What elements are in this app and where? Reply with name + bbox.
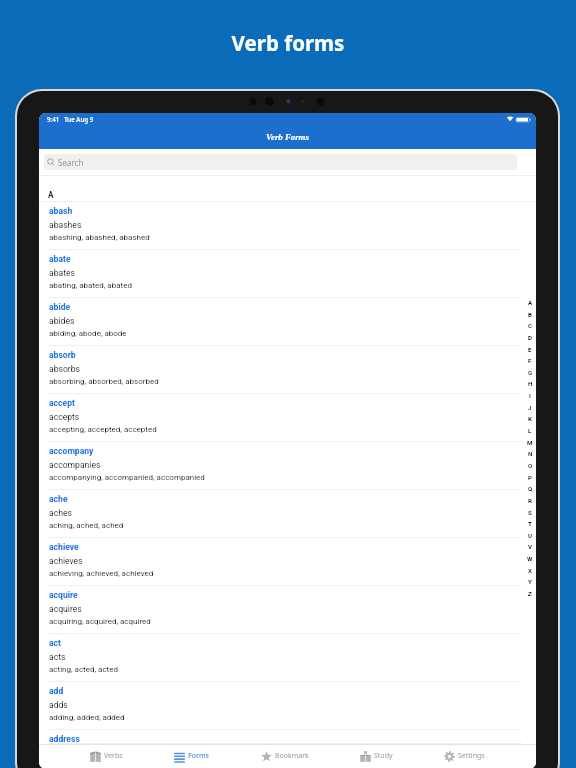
staticText: achieves: [49, 556, 83, 566]
staticText: abate: [49, 254, 71, 264]
button[interactable]: accept: [39, 394, 536, 442]
staticText: K: [528, 415, 532, 422]
button[interactable]: Study: [360, 745, 393, 768]
staticText: O: [528, 462, 533, 469]
staticText: acquiring, acquired, acquired: [49, 617, 151, 626]
staticText: add: [49, 686, 64, 696]
staticText: E: [528, 346, 532, 353]
staticText: accepting, accepted, accepted: [49, 425, 157, 434]
button[interactable]: ache: [39, 490, 536, 538]
staticText: Verb forms: [0, 29, 576, 57]
staticText: Verbs: [104, 751, 123, 761]
staticText: ache: [49, 494, 68, 504]
button[interactable]: act: [39, 634, 536, 682]
staticText: S: [528, 509, 532, 516]
staticText: abiding, abode, abode: [49, 329, 127, 338]
staticText: absorb: [49, 350, 76, 360]
staticText: C: [528, 322, 533, 329]
staticText: acquires: [49, 604, 82, 614]
staticText: J: [528, 404, 532, 411]
button[interactable]: Settings: [444, 745, 485, 768]
staticText: accept: [49, 398, 75, 408]
staticText: Forms: [188, 751, 209, 761]
staticText: N: [528, 450, 533, 457]
staticText: achieving, achieved, achieved: [49, 569, 154, 578]
button[interactable]: Bookmark: [261, 745, 309, 768]
staticText: R: [528, 497, 532, 504]
staticText: address: [49, 734, 80, 744]
button[interactable]: abide: [39, 298, 536, 346]
staticText: acting, acted, acted: [49, 665, 118, 674]
staticText: A: [528, 299, 533, 306]
staticText: abashes: [49, 220, 82, 230]
staticText: adds: [49, 700, 68, 710]
staticText: aching, ached, ached: [49, 521, 124, 530]
button[interactable]: Search: [44, 154, 517, 170]
staticText: aches: [49, 508, 72, 518]
staticText: V: [528, 543, 533, 550]
staticText: X: [528, 567, 532, 574]
staticText: A: [48, 190, 54, 200]
staticText: Search: [58, 157, 84, 168]
staticText: Q: [528, 485, 533, 492]
staticText: abide: [49, 302, 71, 312]
staticText: adding, added, added: [49, 713, 125, 722]
staticText: H: [528, 380, 533, 387]
staticText: 9:41 Tue Aug 9: [47, 115, 94, 123]
staticText: accompanies: [49, 460, 101, 470]
staticText: Y: [528, 578, 532, 585]
staticText: addressing, addressed, addressed: [49, 761, 171, 768]
staticText: abashing, abashed, abashed: [49, 233, 150, 242]
staticText: P: [528, 474, 532, 481]
button[interactable]: abate: [39, 250, 536, 298]
staticText: absorbing, absorbed, absorbed: [49, 377, 159, 386]
button[interactable]: add: [39, 682, 536, 730]
button[interactable]: achieve: [39, 538, 536, 586]
staticText: absorbs: [49, 364, 81, 374]
button[interactable]: Verbs: [90, 745, 123, 768]
staticText: accompany: [49, 446, 94, 456]
staticText: accompanying, accompanied, accompanied: [49, 473, 205, 482]
staticText: act: [49, 638, 61, 648]
button[interactable]: Forms: [174, 745, 209, 768]
staticText: D: [528, 334, 533, 341]
staticText: T: [528, 520, 532, 527]
staticText: accepts: [49, 412, 80, 422]
staticText: Settings: [458, 751, 485, 761]
button[interactable]: abash: [39, 202, 536, 250]
staticText: abash: [49, 206, 73, 216]
staticText: U: [528, 532, 533, 539]
staticText: Z: [528, 590, 532, 597]
staticText: Study: [374, 751, 393, 761]
staticText: Verb Forms: [39, 132, 536, 142]
staticText: acts: [49, 652, 66, 662]
button[interactable]: address: [39, 730, 536, 744]
staticText: acquire: [49, 590, 78, 600]
staticText: F: [528, 357, 532, 364]
button[interactable]: absorb: [39, 346, 536, 394]
staticText: L: [528, 427, 532, 434]
staticText: abates: [49, 268, 75, 278]
staticText: W: [527, 555, 533, 562]
button[interactable]: accompany: [39, 442, 536, 490]
staticText: abides: [49, 316, 75, 326]
staticText: abating, abated, abated: [49, 281, 132, 290]
staticText: Bookmark: [275, 751, 309, 761]
staticText: M: [527, 439, 533, 446]
staticText: B: [528, 311, 532, 318]
button[interactable]: acquire: [39, 586, 536, 634]
staticText: I: [529, 392, 531, 399]
staticText: achieve: [49, 542, 79, 552]
staticText: G: [528, 369, 533, 376]
